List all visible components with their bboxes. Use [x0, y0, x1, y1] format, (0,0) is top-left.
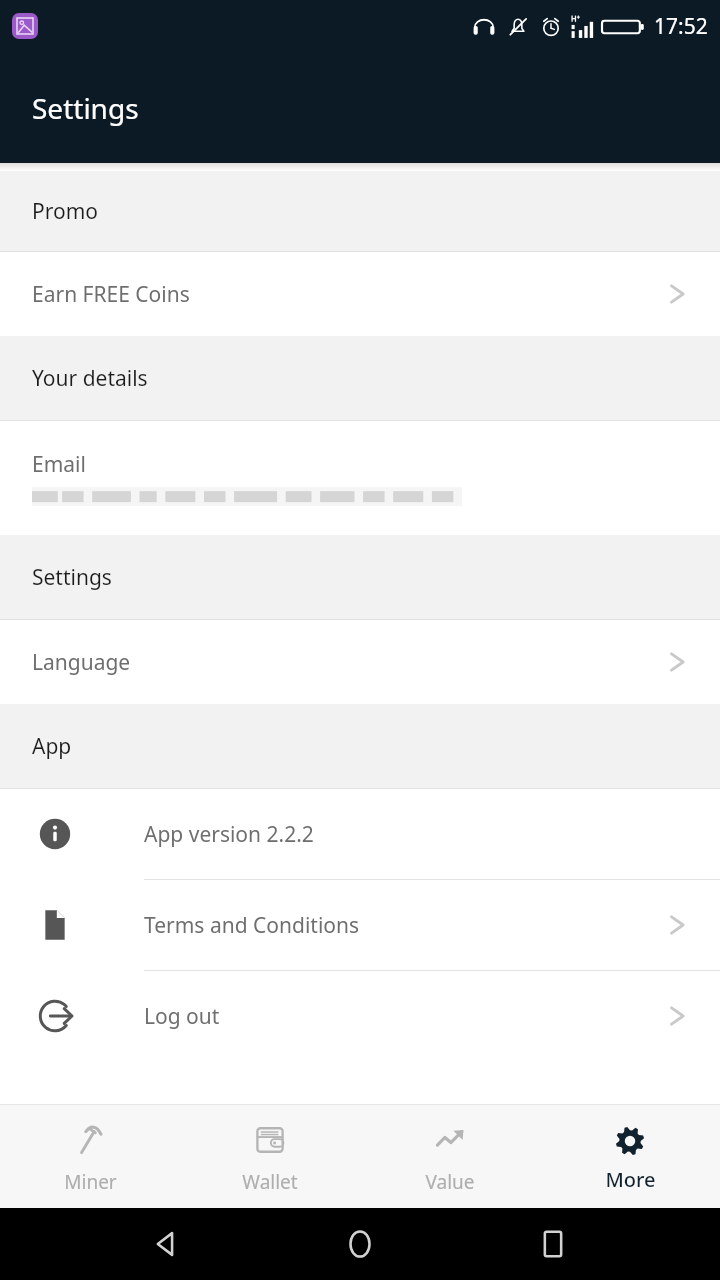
button[interactable]: More: [540, 1105, 720, 1208]
staticText: Terms and Conditions: [144, 911, 360, 940]
other: Log out: [32, 993, 78, 1039]
button[interactable]: Home: [335, 1219, 385, 1269]
other: Info: [32, 811, 78, 857]
staticText: Wallet: [242, 1169, 298, 1195]
button[interactable]: Earn FREE Coins: [0, 252, 720, 336]
button[interactable]: Wallet: [180, 1105, 360, 1208]
staticText: Promo: [32, 197, 99, 226]
button[interactable]: Terms and Conditions: [0, 880, 720, 970]
staticText: 17:52: [654, 12, 708, 41]
staticText: Miner: [64, 1169, 117, 1195]
staticText: Log out: [144, 1002, 220, 1031]
button[interactable]: Info: [0, 789, 720, 879]
staticText: Earn FREE Coins: [32, 280, 190, 309]
staticText: Email: [32, 450, 86, 479]
staticText: Your details: [32, 364, 148, 393]
other: Terms and Conditions: [32, 902, 78, 948]
button[interactable]: Back: [143, 1219, 193, 1269]
staticText: App version 2.2.2: [144, 820, 314, 849]
button[interactable]: Value: [360, 1105, 540, 1208]
button[interactable]: Log out: [0, 971, 720, 1061]
button[interactable]: Miner: [0, 1105, 180, 1208]
button[interactable]: Language: [0, 620, 720, 704]
button[interactable]: Recent apps: [528, 1219, 578, 1269]
staticText: App: [32, 732, 72, 761]
staticText: Settings: [32, 89, 139, 127]
staticText: Settings: [32, 563, 112, 592]
staticText: Value: [425, 1169, 475, 1195]
button[interactable]: Email: [0, 421, 720, 535]
staticText: Language: [32, 648, 131, 677]
staticText: More: [605, 1166, 656, 1193]
